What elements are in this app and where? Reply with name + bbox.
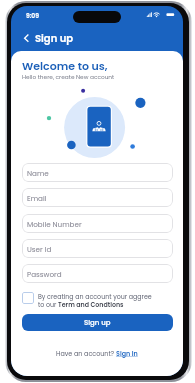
button[interactable]: Mobile Number (22, 214, 173, 233)
other: Back (22, 33, 32, 43)
staticText: Email (27, 193, 47, 203)
staticText: Sign up (35, 31, 74, 45)
button[interactable]: By creating an account your aggree to ou… (22, 292, 148, 309)
staticText: By creating an account your aggree to ou… (38, 292, 152, 309)
staticText: Hello there, create New account (22, 73, 115, 81)
button[interactable]: Sign In (116, 349, 138, 358)
staticText: Welcome to us, (22, 58, 108, 73)
staticText: Name (27, 168, 49, 178)
staticText: Have an account? (56, 349, 116, 358)
button[interactable]: Sign up (22, 314, 173, 331)
staticText: 9:09 (26, 12, 39, 20)
button[interactable]: Password (22, 264, 173, 283)
button[interactable]: Back (18, 28, 75, 48)
staticText: Mobile Number (27, 219, 82, 229)
button[interactable]: Name (22, 163, 173, 182)
button[interactable]: User Id (22, 239, 173, 258)
staticText: Sign up (84, 318, 111, 328)
staticText: User Id (27, 244, 52, 254)
button[interactable]: Email (22, 188, 173, 207)
staticText: Password (27, 269, 62, 279)
